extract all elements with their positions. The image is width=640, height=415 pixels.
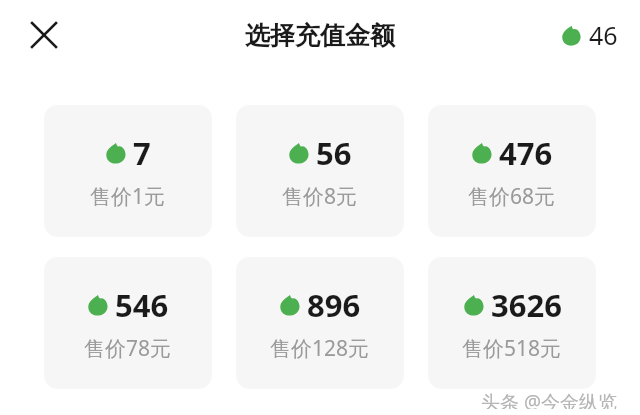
staticText: 3626	[491, 284, 562, 326]
button[interactable]: 476	[428, 105, 596, 237]
staticText: 476	[499, 132, 553, 174]
button[interactable]: 7	[44, 105, 212, 237]
button[interactable]: 3626	[428, 257, 596, 389]
staticText: 售价78元	[84, 334, 172, 363]
button[interactable]: Close	[22, 13, 66, 57]
staticText: 售价518元	[462, 334, 562, 363]
button[interactable]: 56	[236, 105, 404, 237]
button[interactable]: 896	[236, 257, 404, 389]
staticText: 选择充值金额	[245, 20, 395, 51]
button[interactable]: 46	[561, 18, 618, 52]
staticText: 56	[316, 132, 352, 174]
staticText: 46	[589, 18, 618, 52]
staticText: 546	[115, 284, 169, 326]
staticText: 7	[133, 132, 151, 174]
staticText: 售价128元	[270, 334, 370, 363]
staticText: 售价68元	[468, 182, 556, 211]
staticText: 售价1元	[90, 182, 166, 211]
staticText: 头条 @今金纵览	[481, 389, 618, 409]
button[interactable]: 546	[44, 257, 212, 389]
staticText: 896	[307, 284, 361, 326]
staticText: 售价8元	[282, 182, 358, 211]
